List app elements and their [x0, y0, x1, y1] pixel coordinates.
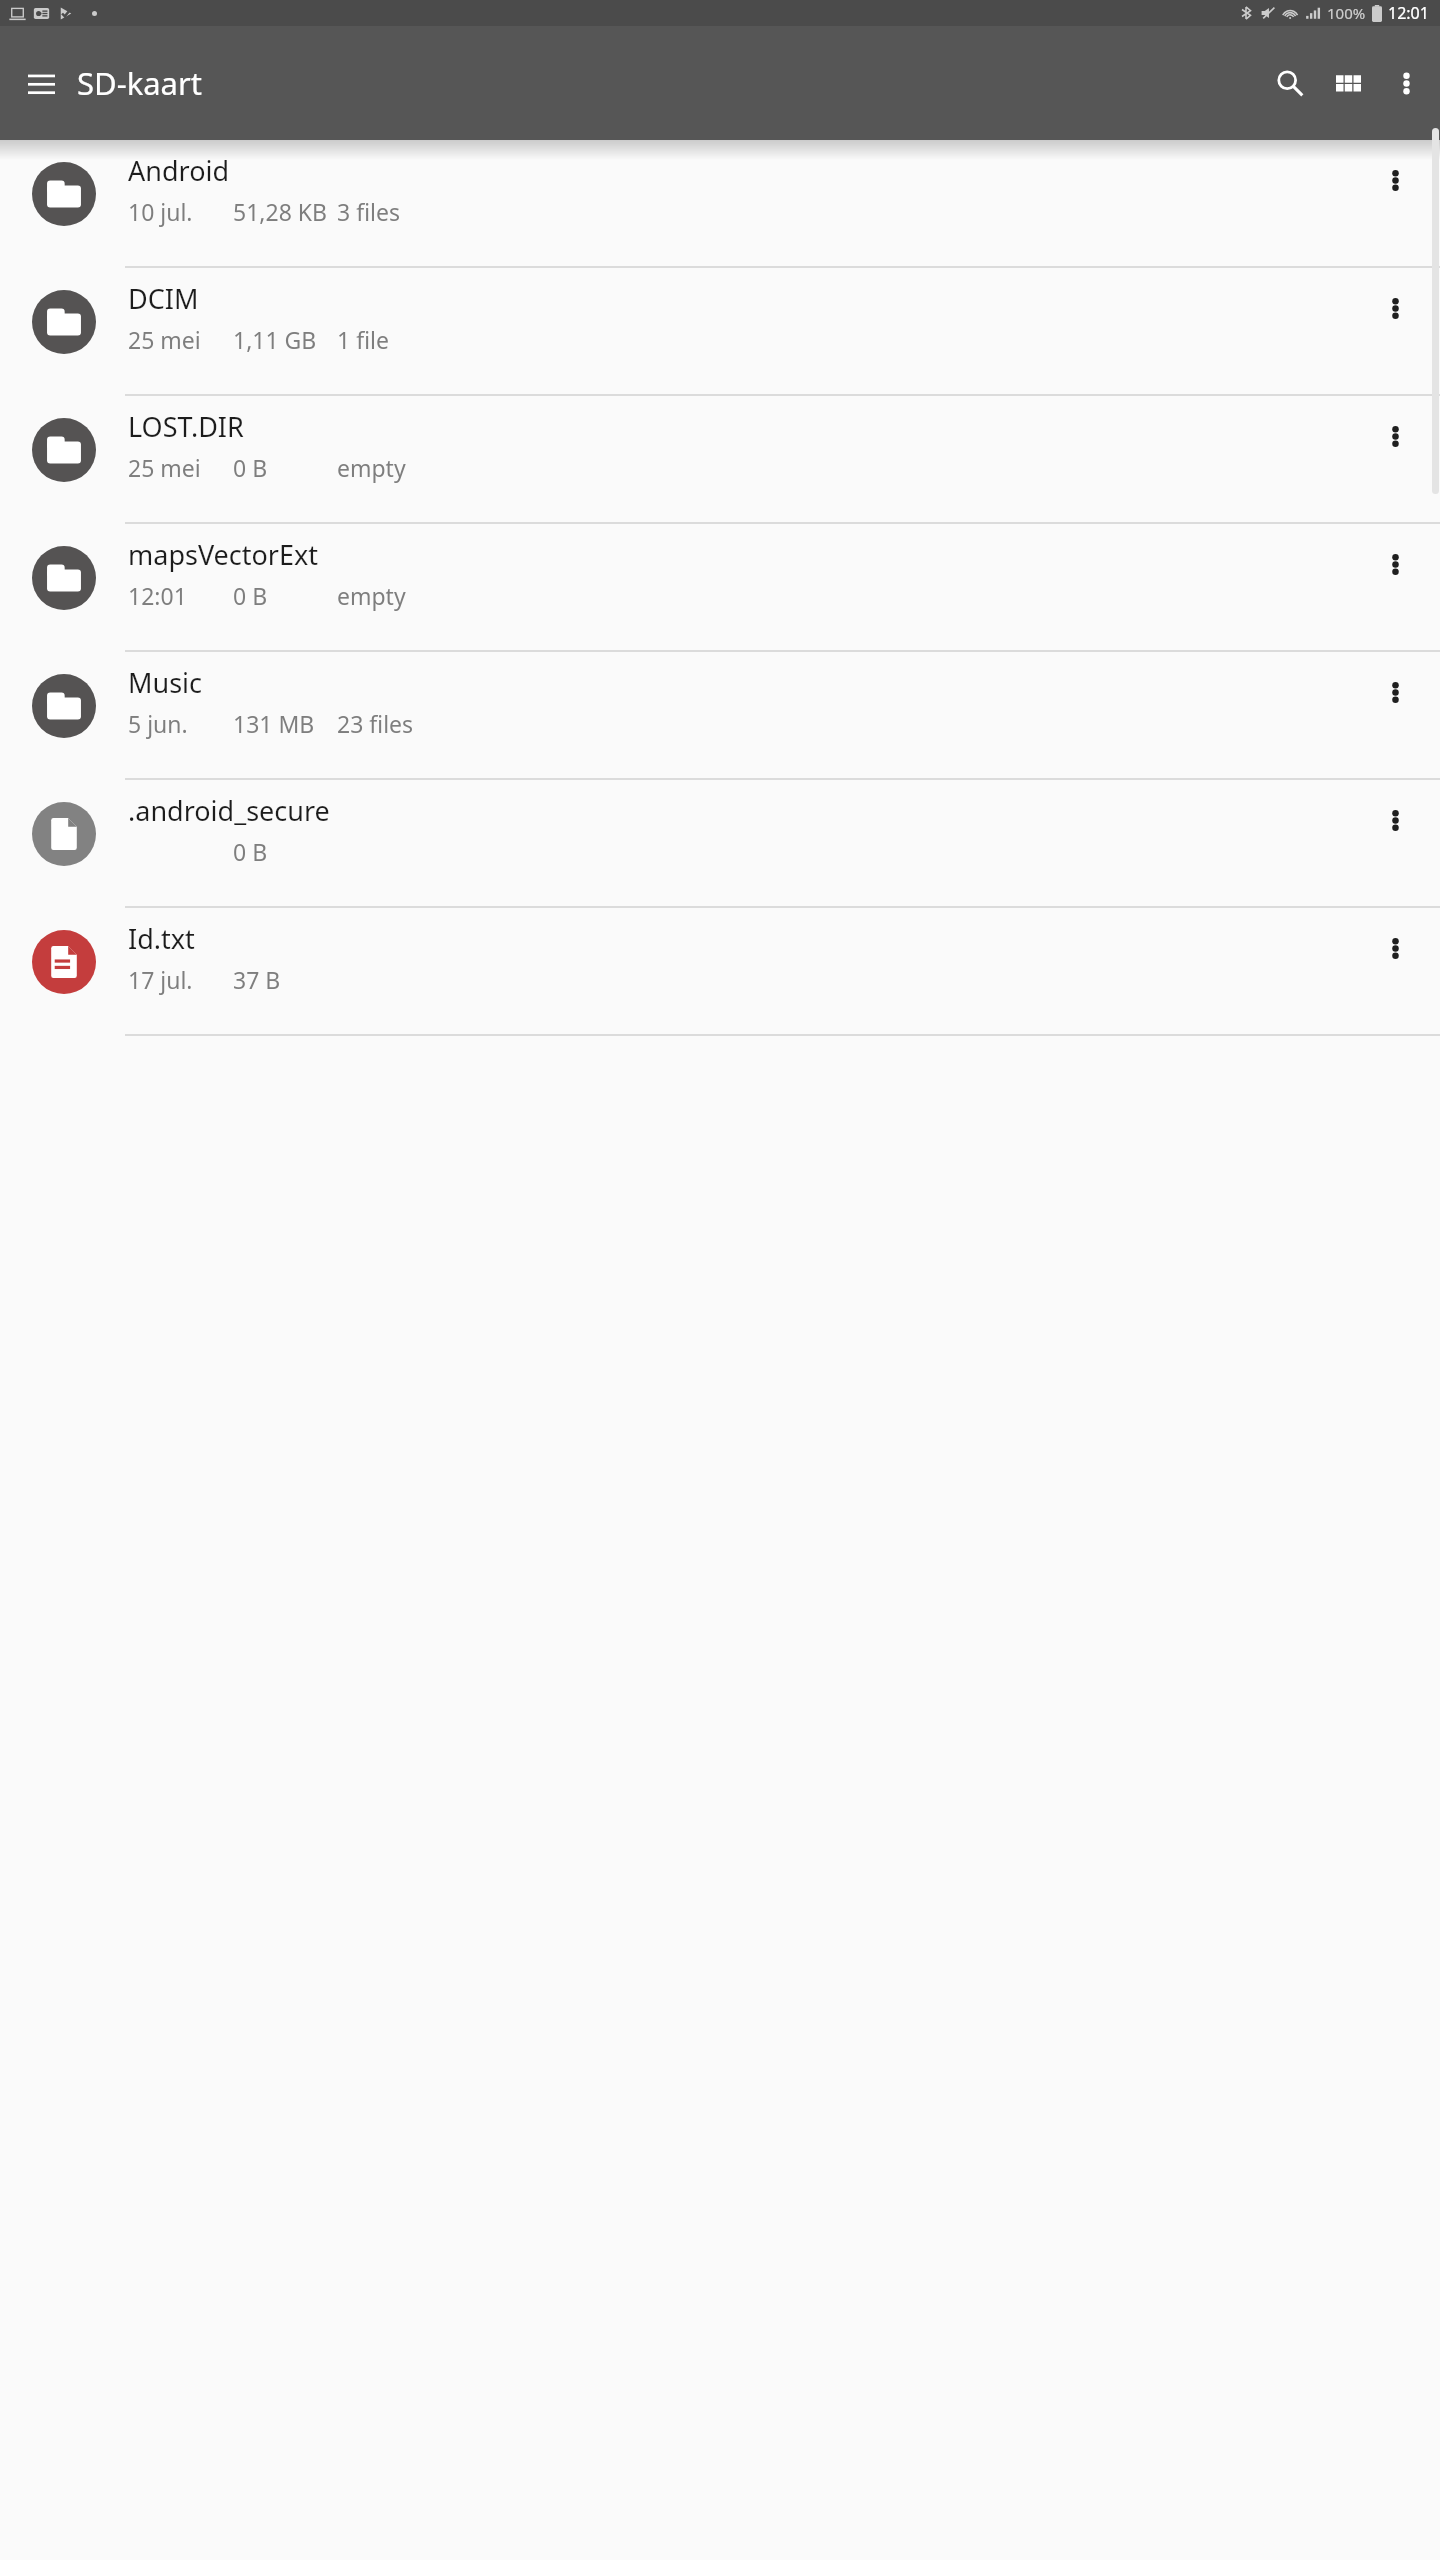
- staticText: 0 B: [233, 452, 268, 483]
- button[interactable]: Search: [1261, 54, 1319, 112]
- button[interactable]: More options for .android_secure: [1367, 792, 1423, 848]
- staticText: mapsVectorExt: [128, 536, 319, 573]
- staticText: Music: [128, 664, 203, 701]
- staticText: 12:01: [1388, 2, 1429, 24]
- staticText: 1 file: [337, 324, 389, 355]
- staticText: 3 files: [337, 196, 400, 227]
- button[interactable]: Music: [0, 652, 1440, 780]
- staticText: Id.txt: [128, 920, 195, 957]
- staticText: 25 mei: [128, 324, 201, 355]
- staticText: .android_secure: [128, 792, 330, 829]
- staticText: SD-kaart: [77, 62, 202, 104]
- staticText: Android: [128, 152, 230, 189]
- button[interactable]: More options for LOST.DIR: [1367, 408, 1423, 464]
- staticText: 10 jul.: [128, 196, 193, 227]
- button[interactable]: .android_secure: [0, 780, 1440, 908]
- staticText: 100%: [1327, 3, 1366, 23]
- staticText: empty: [337, 580, 406, 611]
- staticText: 51,28 KB: [233, 196, 327, 227]
- button[interactable]: More options for Music: [1367, 664, 1423, 720]
- staticText: empty: [337, 452, 406, 483]
- button[interactable]: More options for Android: [1367, 152, 1423, 208]
- button[interactable]: More options: [1377, 54, 1435, 112]
- button[interactable]: More options for DCIM: [1367, 280, 1423, 336]
- button[interactable]: DCIM: [0, 268, 1440, 396]
- button[interactable]: More options for Id.txt: [1367, 920, 1423, 976]
- staticText: 5 jun.: [128, 708, 188, 739]
- button[interactable]: Open navigation menu: [12, 54, 70, 112]
- staticText: 131 MB: [233, 708, 315, 739]
- button[interactable]: Id.txt: [0, 908, 1440, 1036]
- staticText: 25 mei: [128, 452, 201, 483]
- staticText: 17 jul.: [128, 964, 193, 995]
- staticText: 37 B: [233, 964, 281, 995]
- button[interactable]: mapsVectorExt: [0, 524, 1440, 652]
- staticText: LOST.DIR: [128, 408, 244, 445]
- button[interactable]: LOST.DIR: [0, 396, 1440, 524]
- staticText: 0 B: [233, 580, 268, 611]
- button[interactable]: Android: [0, 140, 1440, 268]
- staticText: 23 files: [337, 708, 414, 739]
- staticText: DCIM: [128, 280, 199, 317]
- staticText: 0 B: [233, 836, 268, 867]
- staticText: 1,11 GB: [233, 324, 317, 355]
- button[interactable]: Switch to grid view: [1319, 54, 1377, 112]
- staticText: 12:01: [128, 580, 187, 611]
- button[interactable]: More options for mapsVectorExt: [1367, 536, 1423, 592]
